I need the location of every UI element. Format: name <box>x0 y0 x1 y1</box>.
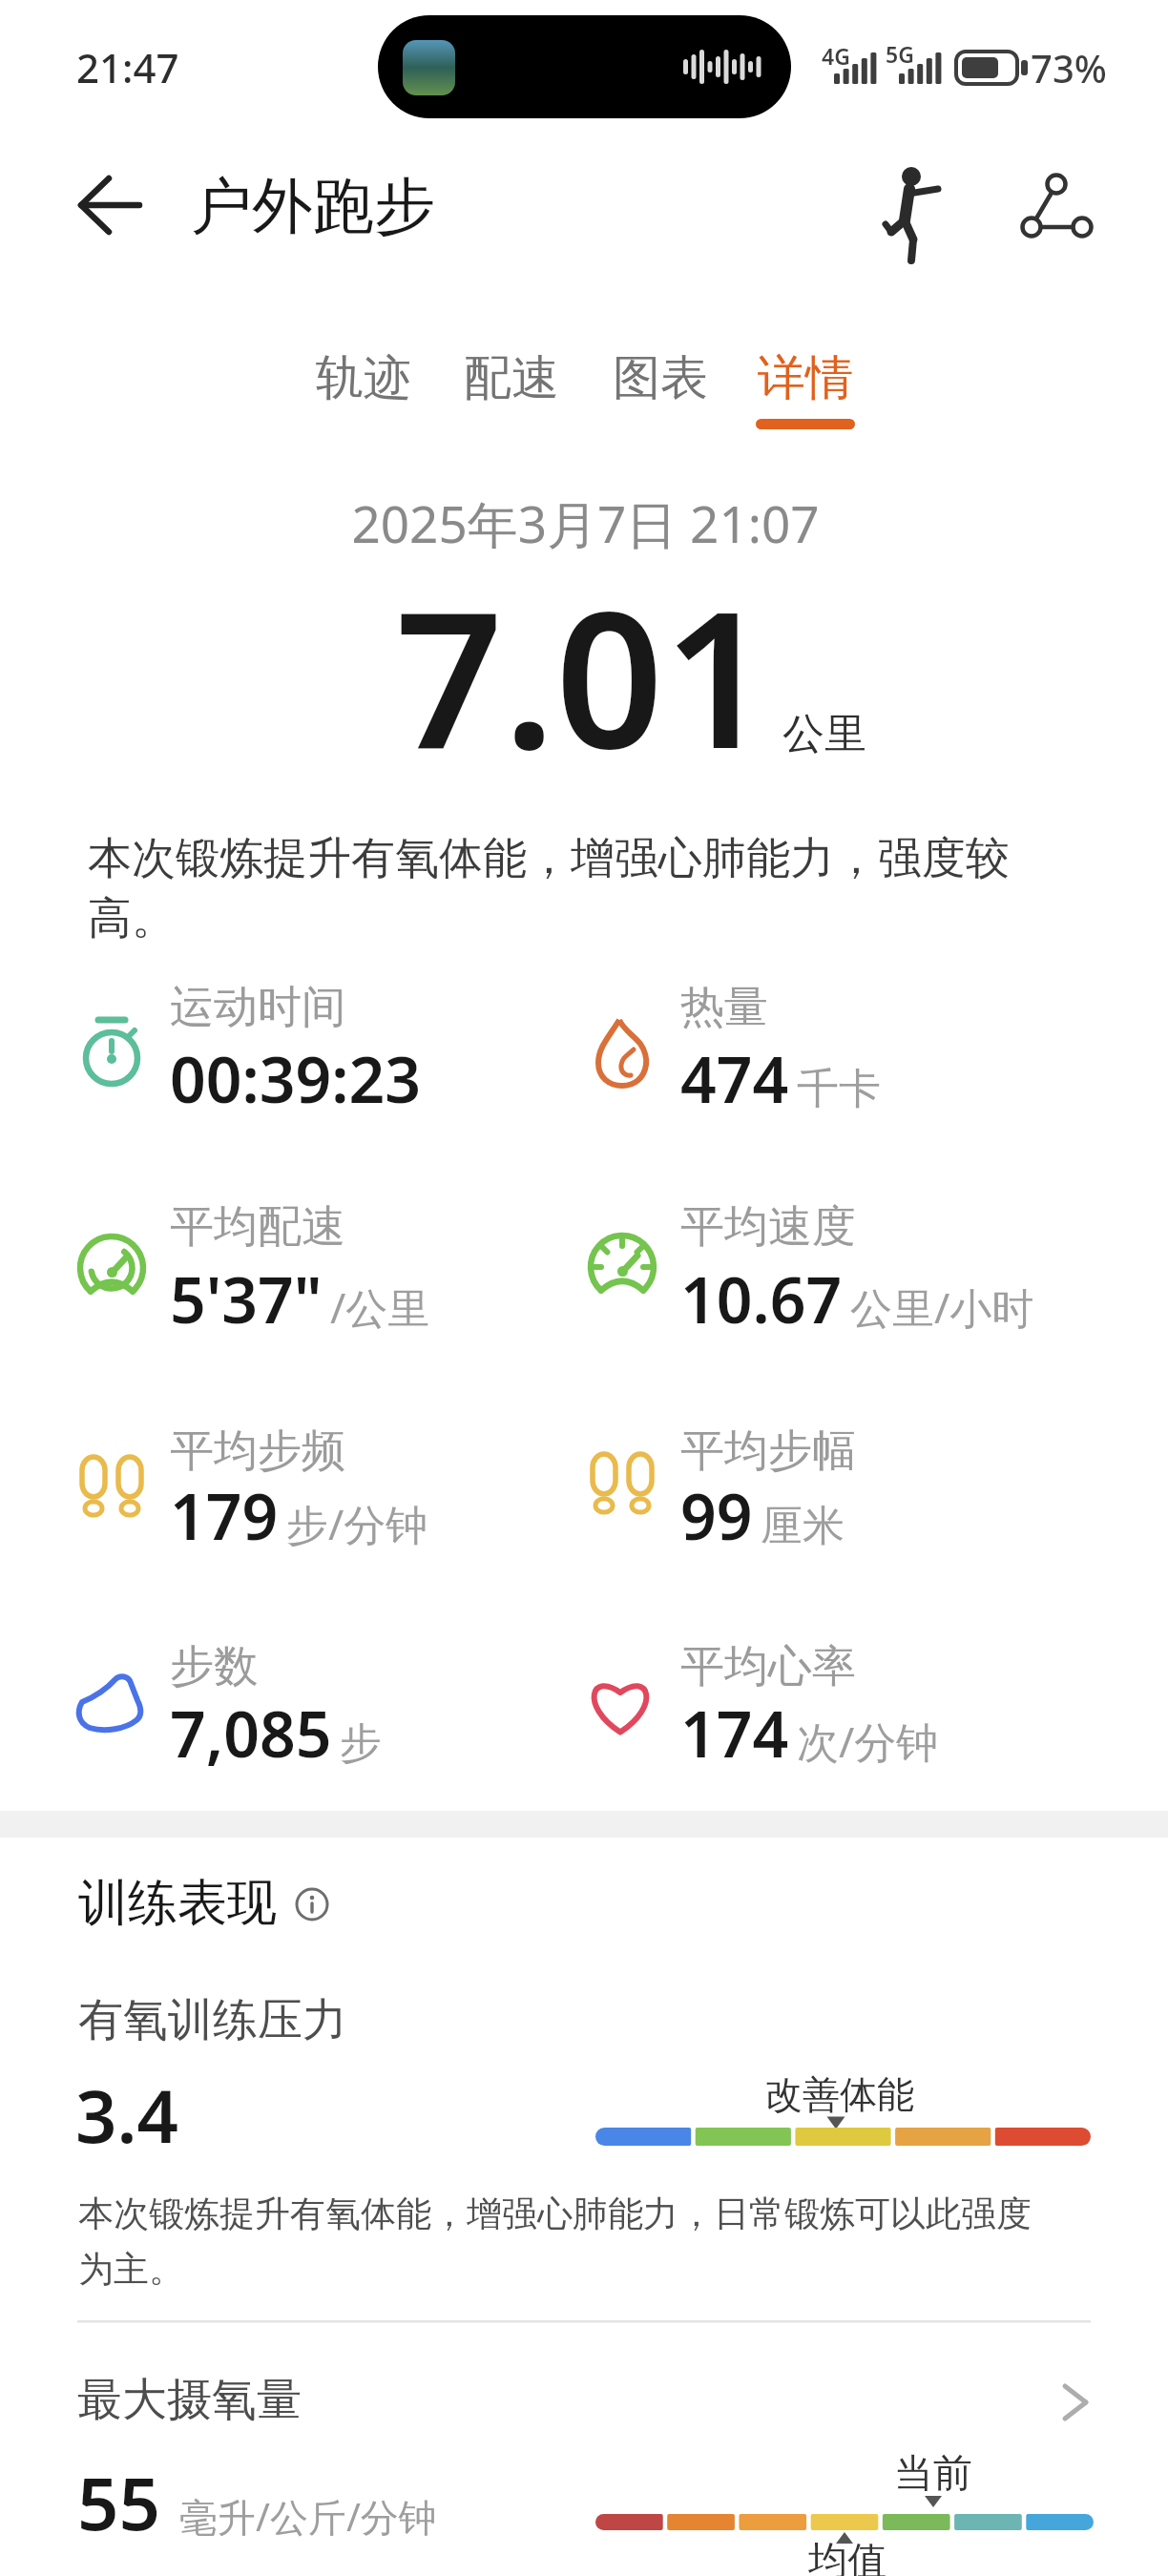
button[interactable] <box>864 157 959 253</box>
staticText: 7,085 <box>170 1690 332 1776</box>
staticText: 步数 <box>170 1639 258 1694</box>
staticText: 99 <box>680 1472 753 1558</box>
staticText: 179 <box>170 1472 279 1558</box>
button[interactable] <box>57 162 162 248</box>
staticText: 本次锻炼提升有氧体能，增强心肺能力，日常锻炼可以此强度 <box>78 2192 1032 2236</box>
staticText: 改善体能 <box>765 2071 914 2118</box>
staticText: 55 <box>77 2453 160 2552</box>
staticText: 5G <box>886 39 914 69</box>
staticText: 00:39:23 <box>170 1035 421 1121</box>
staticText: 174 <box>680 1690 789 1776</box>
staticText: 图表 <box>613 348 708 408</box>
staticText: 5'37" <box>170 1256 323 1341</box>
staticText: 千卡 <box>797 1063 881 1115</box>
staticText: 配速 <box>464 348 559 408</box>
button[interactable] <box>594 330 727 426</box>
staticText: 次/分钟 <box>797 1713 939 1770</box>
button[interactable] <box>297 330 430 426</box>
staticText: 轨迹 <box>316 348 411 408</box>
staticText: 4G <box>822 41 850 71</box>
staticText: 毫升/公斤/分钟 <box>179 2490 437 2543</box>
staticText: 73% <box>1031 42 1107 93</box>
staticText: 高。 <box>88 891 176 946</box>
staticText: 7.01 <box>395 546 772 803</box>
staticText: 平均步频 <box>170 1423 345 1479</box>
staticText: 训练表现 <box>78 1872 277 1935</box>
staticText: 平均配速 <box>170 1199 345 1255</box>
staticText: 平均心率 <box>680 1639 856 1694</box>
staticText: 最大摄氧量 <box>77 2372 302 2428</box>
staticText: 厘米 <box>761 1500 845 1552</box>
button[interactable] <box>739 330 872 426</box>
staticText: 平均速度 <box>680 1199 856 1255</box>
staticText: 均值 <box>808 2537 886 2576</box>
button[interactable] <box>1007 157 1102 253</box>
staticText: 公里 <box>782 708 866 760</box>
staticText: 为主。 <box>78 2247 184 2292</box>
button[interactable] <box>38 2347 1130 2538</box>
staticText: 运动时间 <box>170 980 345 1035</box>
staticText: 步/分钟 <box>286 1495 428 1552</box>
staticText: 平均步幅 <box>680 1423 856 1479</box>
staticText: 3.4 <box>75 2066 178 2165</box>
staticText: 详情 <box>758 348 853 408</box>
staticText: 当前 <box>894 2449 972 2499</box>
staticText: 步 <box>340 1717 382 1770</box>
button[interactable] <box>286 1880 338 1931</box>
staticText: 10.67 <box>680 1256 843 1341</box>
staticText: 474 <box>680 1035 789 1121</box>
staticText: 户外跑步 <box>191 168 435 245</box>
staticText: 热量 <box>680 980 768 1035</box>
staticText: 21:47 <box>76 40 179 94</box>
staticText: 公里/小时 <box>850 1278 1034 1336</box>
staticText: 本次锻炼提升有氧体能，增强心肺能力，强度较 <box>88 831 1010 886</box>
staticText: 有氧训练压力 <box>78 1992 347 2048</box>
button[interactable] <box>445 330 578 426</box>
staticText: 2025年3月7日 21:07 <box>351 488 820 557</box>
staticText: /公里 <box>330 1278 430 1336</box>
